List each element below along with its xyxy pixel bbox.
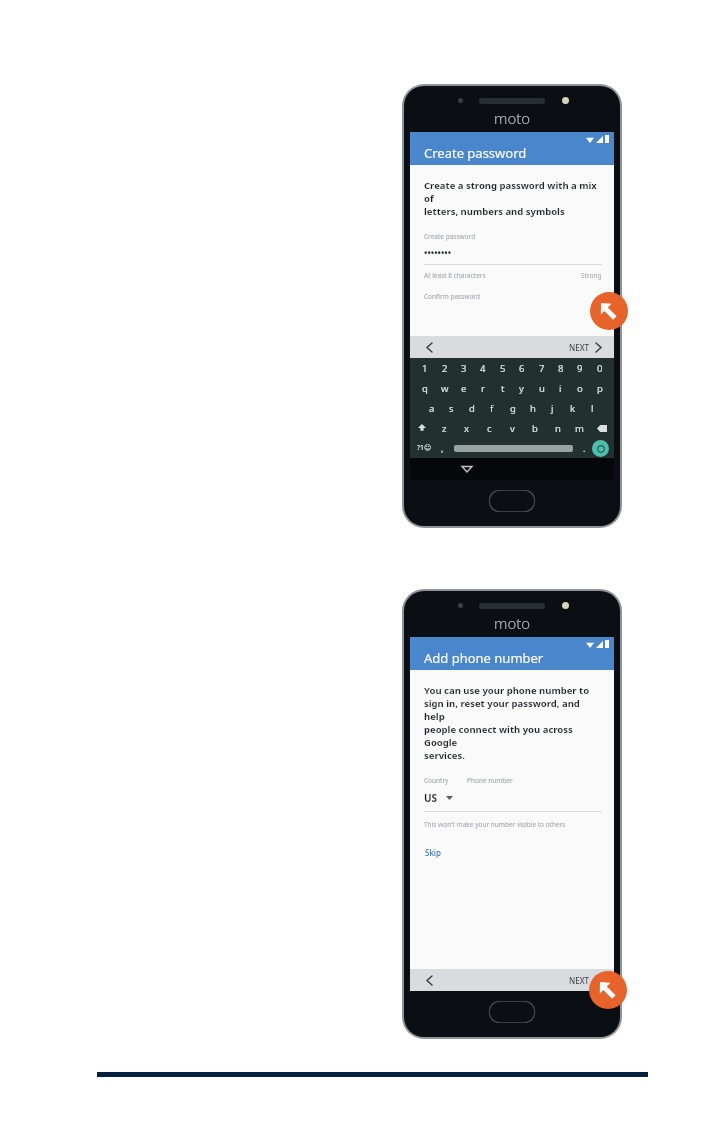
staticText: m (575, 422, 584, 435)
button[interactable]: NEXT (566, 973, 604, 988)
button[interactable]: 9 (571, 360, 588, 377)
button[interactable]: NEXT (566, 340, 604, 355)
button[interactable]: 2 (436, 360, 453, 377)
staticText: i (559, 382, 562, 395)
button[interactable]: n (549, 420, 566, 437)
button[interactable]: f (483, 400, 500, 417)
button[interactable]: a (423, 400, 440, 417)
staticText: ?1☺ (417, 443, 432, 453)
staticText: 0 (597, 362, 603, 375)
button[interactable]: d (463, 400, 480, 417)
staticText: n (555, 422, 561, 435)
staticText: 9 (577, 362, 583, 375)
staticText: f (490, 402, 494, 415)
button[interactable]: Back (420, 971, 438, 989)
staticText: 5 (500, 362, 506, 375)
button[interactable]: 1 (416, 360, 433, 377)
button[interactable]: r (474, 380, 491, 397)
staticText: a (429, 402, 435, 415)
staticText: Skip (425, 847, 441, 858)
staticText: y (519, 382, 524, 395)
button[interactable]: b (526, 420, 543, 437)
staticText: US (424, 791, 438, 805)
button[interactable]: h (524, 400, 541, 417)
staticText: l (591, 402, 594, 415)
staticText: NEXT (569, 975, 590, 986)
button[interactable]: y (513, 380, 530, 397)
staticText: This won't make your number visible to o… (424, 820, 566, 829)
button[interactable]: x (458, 420, 475, 437)
staticText: moto (494, 613, 531, 633)
staticText: Create a strong password with a mix of l… (424, 179, 602, 218)
button[interactable]: g (504, 400, 521, 417)
button[interactable]: q (416, 380, 433, 397)
staticText: You can use your phone number to sign in… (424, 684, 602, 762)
staticText: 1 (422, 362, 428, 375)
button[interactable]: k (564, 400, 581, 417)
staticText: u (539, 382, 545, 395)
button[interactable]: m (571, 420, 588, 437)
staticText: 4 (480, 362, 486, 375)
button[interactable]: l (584, 400, 601, 417)
staticText: Phone number (467, 776, 513, 785)
staticText: d (469, 402, 475, 415)
staticText: 2 (442, 362, 448, 375)
staticText: r (481, 382, 485, 395)
button[interactable]: Shift (414, 420, 430, 436)
staticText: w (441, 382, 449, 395)
staticText: , (441, 442, 444, 454)
staticText: moto (494, 108, 531, 128)
button[interactable]: 4 (474, 360, 491, 377)
button[interactable]: Backspace (594, 420, 610, 436)
staticText: •••••••• (424, 246, 452, 258)
staticText: x (464, 422, 470, 435)
button[interactable]: v (504, 420, 521, 437)
staticText: Country (424, 776, 449, 785)
button[interactable]: i (552, 380, 569, 397)
button[interactable]: Back (420, 338, 438, 356)
staticText: Confirm password (424, 292, 480, 301)
staticText: At least 8 characters (424, 271, 486, 280)
button[interactable]: e (455, 380, 472, 397)
staticText: v (510, 422, 515, 435)
button[interactable]: c (481, 420, 498, 437)
staticText: Create password (424, 144, 527, 162)
staticText: b (532, 422, 538, 435)
button[interactable]: Tap here (589, 971, 627, 1009)
button[interactable]: Tap here (590, 292, 628, 330)
staticText: Strong (581, 271, 602, 280)
button[interactable]: j (544, 400, 561, 417)
staticText: . (583, 442, 586, 454)
staticText: o (577, 382, 583, 395)
button[interactable]: Skip (424, 845, 442, 860)
button[interactable]: 5 (494, 360, 511, 377)
button[interactable]: Symbols (415, 439, 433, 457)
button[interactable]: s (443, 400, 460, 417)
staticText: e (461, 382, 467, 395)
button[interactable]: w (436, 380, 453, 397)
staticText: 7 (539, 362, 545, 375)
button[interactable]: 0 (591, 360, 608, 377)
button[interactable]: 3 (455, 360, 472, 377)
staticText: NEXT (569, 342, 590, 353)
button[interactable]: 8 (552, 360, 569, 377)
staticText: s (449, 402, 454, 415)
button[interactable]: t (494, 380, 511, 397)
button[interactable]: Enter (592, 440, 609, 457)
staticText: q (422, 382, 428, 395)
staticText: c (487, 422, 492, 435)
staticText: 8 (558, 362, 564, 375)
button[interactable]: 6 (513, 360, 530, 377)
button[interactable]: Space (454, 445, 573, 452)
button[interactable]: p (591, 380, 608, 397)
button[interactable]: z (436, 420, 453, 437)
staticText: 6 (519, 362, 525, 375)
button[interactable]: 7 (533, 360, 550, 377)
staticText: g (510, 402, 516, 415)
staticText: h (530, 402, 536, 415)
button[interactable]: o (571, 380, 588, 397)
staticText: z (442, 422, 447, 435)
button[interactable]: u (533, 380, 550, 397)
staticText: k (570, 402, 576, 415)
staticText: 3 (461, 362, 467, 375)
